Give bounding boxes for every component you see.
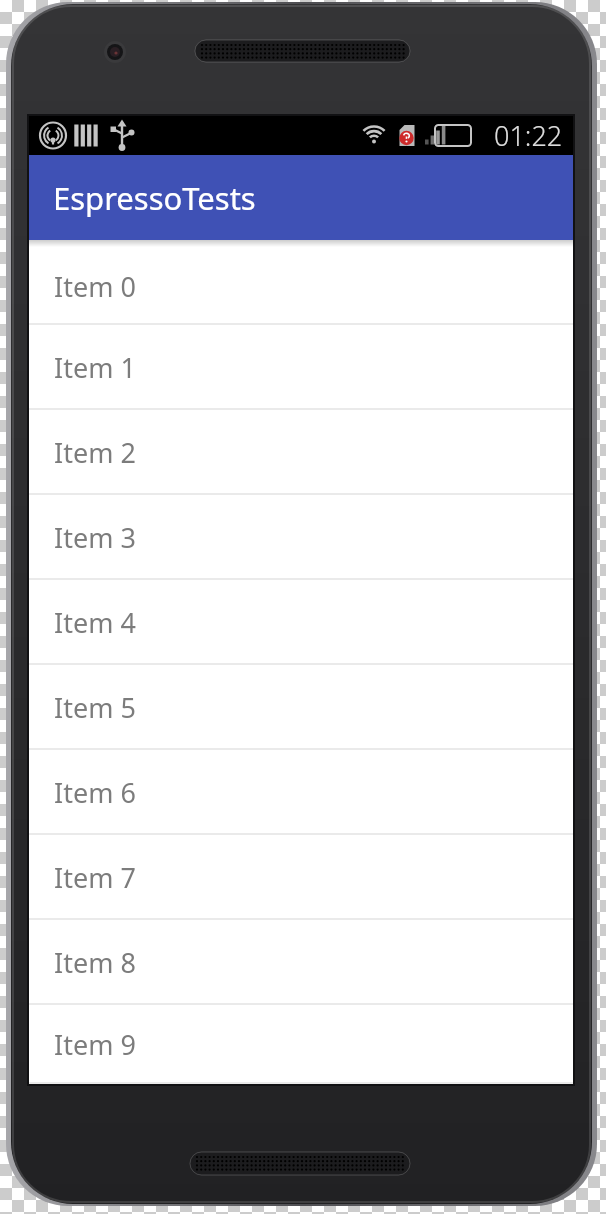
staticText: Item 9: [54, 1026, 136, 1063]
button[interactable]: Item 7: [29, 835, 573, 920]
staticText: Item 1: [54, 349, 136, 386]
button[interactable]: Item 0: [29, 247, 573, 325]
staticText: Item 5: [54, 689, 136, 726]
button[interactable]: Item 6: [29, 750, 573, 835]
staticText: Item 7: [54, 859, 136, 896]
staticText: Item 8: [54, 944, 136, 981]
button[interactable]: Item 9: [29, 1005, 573, 1084]
button[interactable]: Item 4: [29, 580, 573, 665]
staticText: Item 3: [54, 519, 136, 556]
staticText: Item 6: [54, 774, 136, 811]
staticText: Item 2: [54, 434, 136, 471]
staticText: Item 0: [54, 268, 136, 305]
button[interactable]: Item 8: [29, 920, 573, 1005]
staticText: Item 4: [54, 604, 136, 641]
button[interactable]: Item 3: [29, 495, 573, 580]
button[interactable]: Item 1: [29, 325, 573, 410]
staticText: EspressoTests: [53, 177, 256, 219]
button[interactable]: Item 5: [29, 665, 573, 750]
staticText: 01:22: [494, 117, 563, 154]
button[interactable]: Item 2: [29, 410, 573, 495]
button[interactable]: EspressoTests: [29, 155, 573, 240]
